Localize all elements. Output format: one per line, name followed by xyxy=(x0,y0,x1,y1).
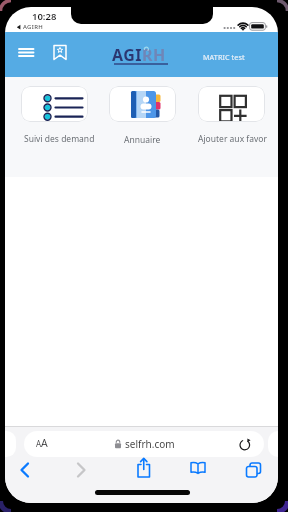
button[interactable] xyxy=(188,461,208,477)
staticText: MATRIC test xyxy=(203,52,245,62)
button[interactable] xyxy=(245,462,263,478)
button[interactable] xyxy=(135,457,153,479)
button[interactable] xyxy=(238,438,252,452)
staticText: AGIRH xyxy=(23,23,44,31)
button[interactable] xyxy=(109,86,176,122)
staticText: AGIRH xyxy=(112,44,166,66)
button[interactable] xyxy=(15,45,37,63)
staticText: 10:28 xyxy=(32,10,57,23)
staticText: Suivi des demand xyxy=(24,133,95,145)
button[interactable] xyxy=(74,461,88,479)
button[interactable] xyxy=(51,43,71,63)
staticText: selfrh.com xyxy=(125,437,175,451)
button[interactable] xyxy=(21,86,88,122)
button[interactable] xyxy=(18,461,32,479)
staticText: Ajouter aux favor xyxy=(198,133,267,145)
button[interactable]: selfrh.com xyxy=(24,431,264,457)
staticText: Annuaire xyxy=(124,134,161,146)
button[interactable] xyxy=(198,86,265,122)
button[interactable]: AA xyxy=(36,436,48,450)
